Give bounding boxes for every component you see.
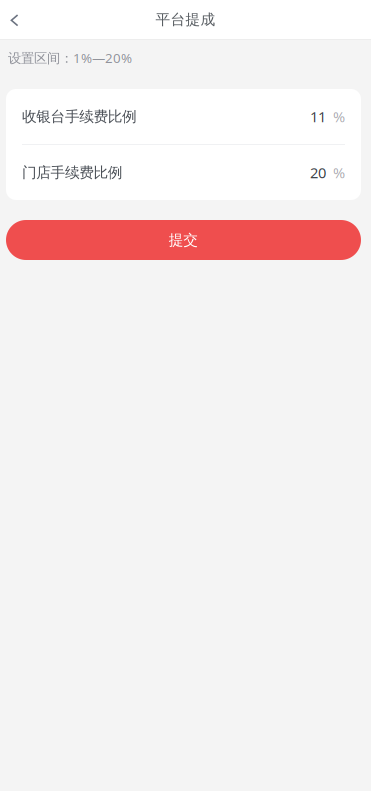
button[interactable]: 门店手续费比例 — [6, 145, 361, 200]
staticText: 平台提成 — [155, 10, 215, 28]
staticText: 收银台手续费比例 — [22, 107, 137, 125]
staticText: 20 — [310, 163, 326, 182]
button[interactable]: Back — [0, 0, 29, 39]
button[interactable]: 提交 — [6, 220, 361, 260]
staticText: 设置区间：1%—20% — [8, 49, 132, 67]
staticText: 提交 — [169, 231, 198, 249]
staticText: 11 — [310, 107, 326, 126]
staticText: % — [333, 163, 345, 182]
staticText: 门店手续费比例 — [22, 163, 123, 181]
staticText: % — [333, 107, 345, 126]
button[interactable]: 收银台手续费比例 — [6, 89, 361, 144]
